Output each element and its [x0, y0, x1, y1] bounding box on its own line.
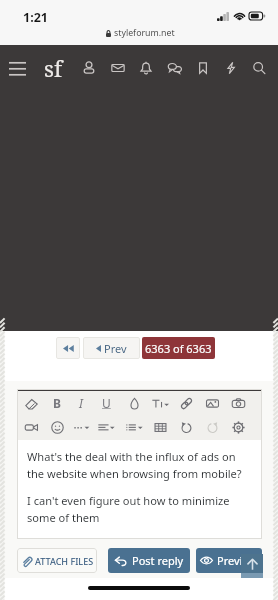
button[interactable]: I — [68, 391, 94, 415]
button[interactable]: Undo — [173, 415, 199, 439]
staticText: Preview — [217, 553, 258, 568]
button[interactable]: More options — [68, 415, 94, 439]
button[interactable]: ATTACH FILES — [17, 548, 97, 573]
staticText: Prev — [104, 341, 127, 356]
button[interactable]: Insert image — [199, 391, 225, 415]
button[interactable]: Search — [245, 51, 273, 85]
button[interactable]: Text alignment — [93, 415, 119, 439]
button[interactable]: Alerts — [132, 51, 160, 85]
button[interactable]: List — [121, 415, 147, 439]
staticText: 1:21 — [23, 9, 48, 26]
staticText: U — [102, 395, 111, 411]
button[interactable]: B — [44, 391, 70, 415]
staticText: styleforum.net — [114, 27, 175, 39]
staticText: Post reply — [132, 553, 184, 568]
staticText: I can't even figure out how to minimize … — [27, 493, 230, 526]
button[interactable]: Redo — [199, 415, 225, 439]
button[interactable]: Emoji — [44, 415, 70, 439]
button[interactable]: Editor settings — [225, 415, 251, 439]
button[interactable]: 6363 of 6363 — [142, 337, 215, 359]
button[interactable]: Inbox — [104, 51, 132, 85]
button[interactable]: Scroll to top — [241, 554, 263, 578]
staticText: What's the deal with the influx of ads o… — [27, 449, 242, 482]
button[interactable]: Text color — [121, 391, 147, 415]
button[interactable]: Remove formatting — [18, 391, 44, 415]
staticText: sf — [44, 53, 63, 83]
button[interactable]: Preview — [196, 548, 262, 573]
button[interactable]: Conversations — [161, 51, 189, 85]
button[interactable]: Font size — [147, 391, 173, 415]
staticText: I — [79, 395, 83, 411]
button[interactable]: What's new — [217, 51, 245, 85]
staticText: 6363 of 6363 — [145, 341, 212, 356]
staticText: B — [53, 395, 61, 411]
button[interactable]: Menu — [3, 51, 32, 85]
button[interactable]: First page — [56, 337, 80, 359]
button[interactable]: Post reply — [108, 548, 190, 573]
button[interactable]: Camera — [225, 391, 251, 415]
button[interactable]: Prev — [83, 337, 140, 359]
button[interactable]: U — [93, 391, 119, 415]
button[interactable]: Insert table — [147, 415, 173, 439]
button[interactable]: Bookmarks — [189, 51, 217, 85]
button[interactable]: Account — [75, 51, 103, 85]
button[interactable]: Insert link — [173, 391, 199, 415]
staticText: ATTACH FILES — [35, 555, 94, 567]
button[interactable]: StyleForum home — [38, 51, 68, 85]
button[interactable]: Insert video — [18, 415, 44, 439]
